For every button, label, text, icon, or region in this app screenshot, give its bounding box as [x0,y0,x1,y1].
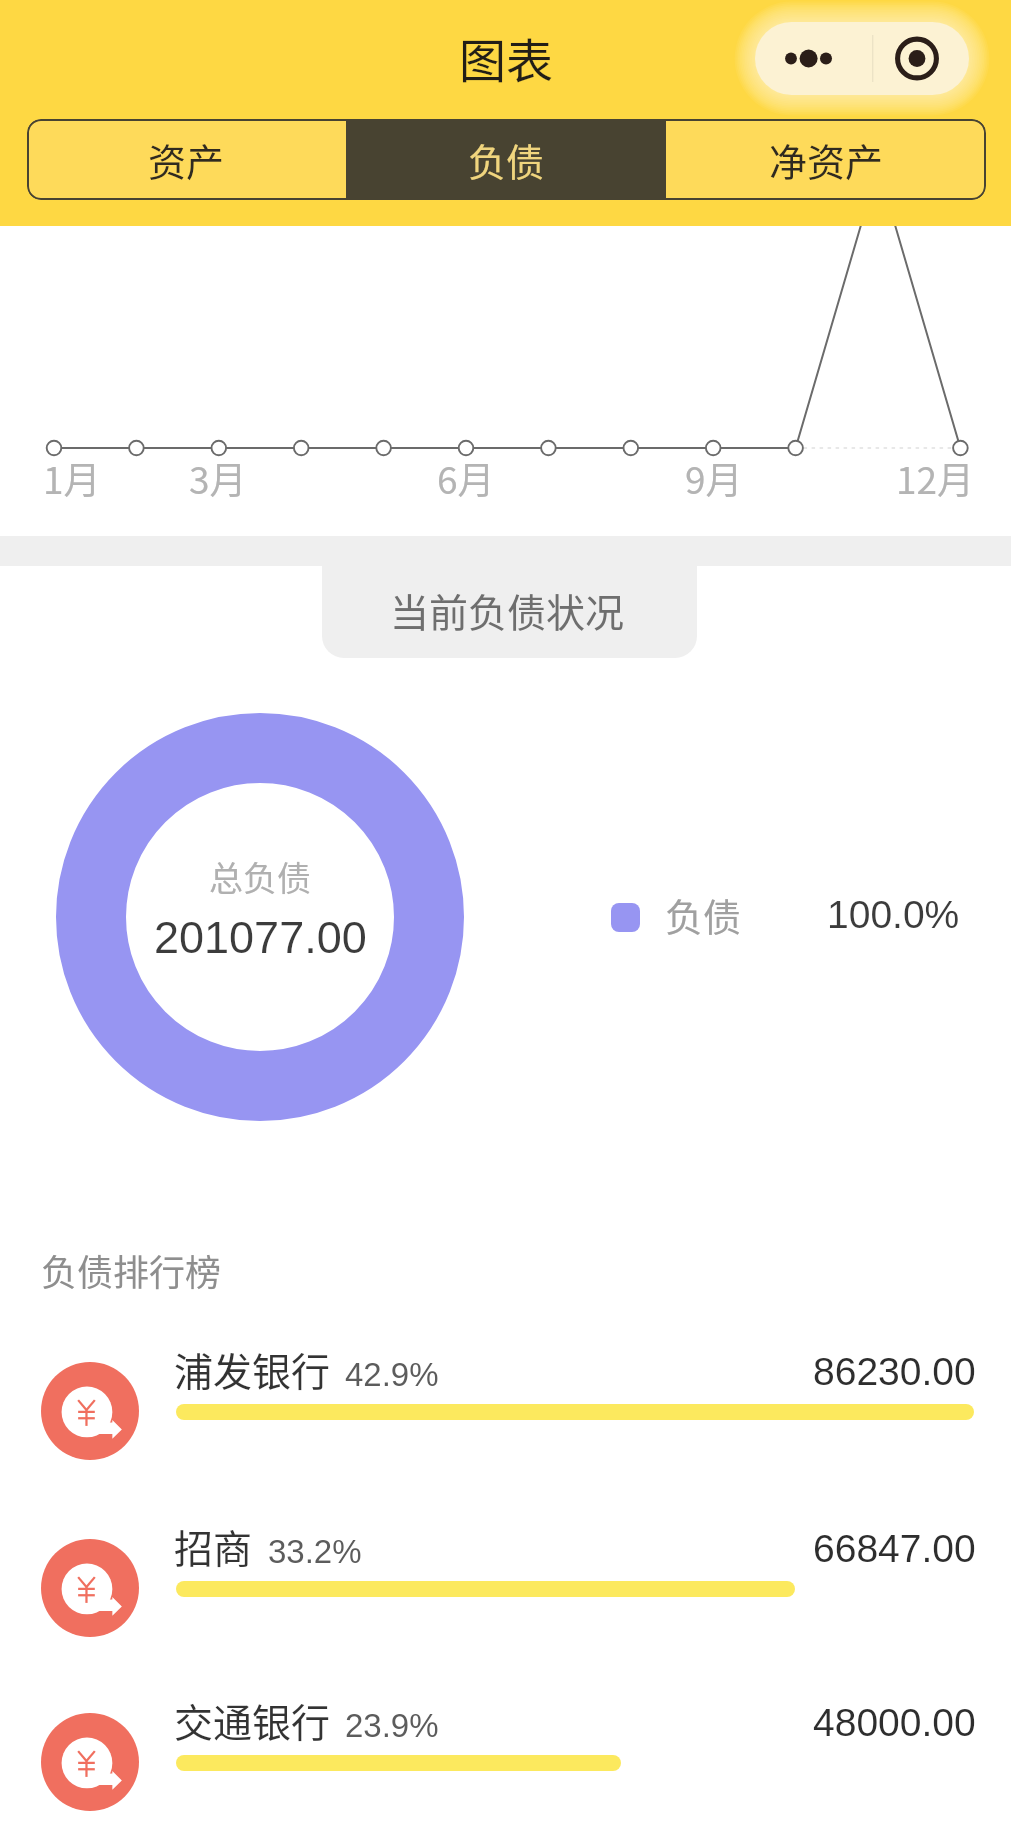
staticText: 1月 [43,451,101,505]
staticText: 9月 [685,451,743,505]
button[interactable]: 净资产 [666,119,986,200]
staticText: 42.9% [345,1356,439,1393]
staticText: 48000.00 [813,1701,976,1745]
staticText: 图表 [459,23,553,91]
button[interactable]: 浦发银行 [0,1341,1011,1461]
staticText: 12月 [896,451,975,505]
staticText: 当前负债状况 [390,582,625,638]
staticText: 负债 [468,132,545,187]
staticText: 资产 [148,132,225,187]
staticText: 净资产 [769,132,884,187]
staticText: 23.9% [345,1707,439,1744]
staticText: 86230.00 [813,1350,976,1394]
button[interactable]: 负债 [346,119,666,200]
staticText: 负债 [665,887,742,942]
staticText: 总负债 [209,852,311,901]
staticText: 负债排行榜 [41,1244,222,1296]
button[interactable]: 招商 [0,1518,1011,1638]
staticText: 100.0% [827,893,960,937]
button[interactable]: 交通银行 [0,1692,1011,1812]
staticText: 6月 [437,451,495,505]
staticText: 66847.00 [813,1527,976,1571]
staticText: 浦发银行 [174,1341,331,1397]
staticText: 交通银行 [174,1692,331,1748]
staticText: 33.2% [268,1533,362,1570]
button[interactable]: 资产 [27,119,346,200]
staticText: 3月 [189,451,247,505]
staticText: 201077.00 [154,912,367,962]
button[interactable]: More options and close [755,22,969,95]
staticText: 招商 [174,1518,253,1574]
